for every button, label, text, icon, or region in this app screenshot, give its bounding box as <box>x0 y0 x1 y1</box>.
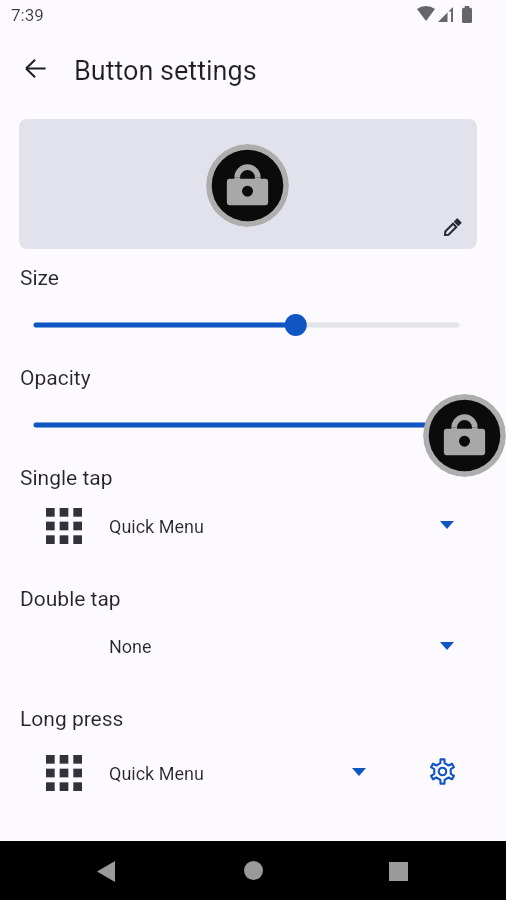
button[interactable]: Recent apps <box>374 847 422 895</box>
staticText: Size <box>20 266 59 291</box>
button[interactable]: Dropdown <box>343 756 375 788</box>
button[interactable]: Slider <box>0 309 506 341</box>
button[interactable]: Home <box>229 846 277 894</box>
staticText: Opacity <box>20 366 91 391</box>
button[interactable]: Settings <box>426 755 459 788</box>
staticText: Button settings <box>74 55 257 87</box>
button[interactable]: Back <box>17 50 54 87</box>
button[interactable]: Back <box>82 847 130 895</box>
staticText: None <box>109 636 152 657</box>
staticText: Single tap <box>20 466 113 491</box>
button[interactable]: Slider <box>0 409 506 441</box>
button[interactable]: Lock button <box>206 144 289 227</box>
button[interactable]: Dropdown <box>431 630 463 662</box>
staticText: Quick Menu <box>109 516 204 537</box>
button[interactable]: Lock button <box>423 394 506 477</box>
button[interactable]: Dropdown <box>431 509 463 541</box>
button[interactable]: Quick Menu action <box>42 504 86 548</box>
staticText: Long press <box>20 707 124 732</box>
button[interactable]: Quick Menu action <box>42 751 86 795</box>
button[interactable]: Edit <box>434 210 470 246</box>
staticText: Double tap <box>20 587 121 612</box>
staticText: Quick Menu <box>109 763 204 784</box>
staticText: 7:39 <box>11 5 44 25</box>
